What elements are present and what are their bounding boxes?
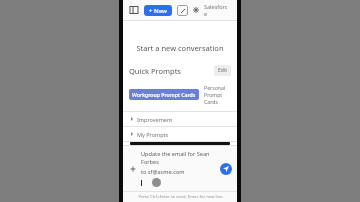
staticText: Salesforce — [204, 3, 230, 17]
button[interactable]: Personal Prompt Cards — [201, 82, 231, 107]
staticText: to sf@acme.com — [141, 168, 185, 176]
staticText: Quick Prompts — [129, 66, 181, 76]
button[interactable]: Assistant — [192, 6, 200, 14]
staticText: Workgroup Prompt Cards — [132, 91, 196, 98]
button[interactable]: + New — [144, 5, 172, 16]
button[interactable]: Salesforce — [202, 2, 232, 18]
staticText: Update the email for Sean Forbes — [141, 150, 217, 166]
button[interactable]: Toggle side panel — [128, 4, 140, 16]
button[interactable]: Add attachment — [128, 164, 138, 174]
button[interactable]: Workgroup Prompt Cards — [129, 89, 199, 100]
button[interactable]: Edit — [214, 65, 231, 76]
button[interactable]: Improvement — [123, 112, 237, 126]
staticText: Press Ctrl+Enter to send, Enter for new … — [138, 194, 223, 200]
staticText: Edit — [218, 67, 227, 74]
staticText: Personal Prompt Cards — [204, 84, 228, 105]
staticText: Start a new conversation — [123, 43, 237, 53]
staticText: + New — [149, 7, 167, 15]
button[interactable]: New note — [177, 5, 188, 16]
button[interactable]: My Prompts — [123, 127, 237, 141]
staticText: My Prompts — [137, 131, 169, 138]
staticText: Improvement — [137, 116, 173, 123]
button[interactable]: Send — [220, 163, 232, 175]
